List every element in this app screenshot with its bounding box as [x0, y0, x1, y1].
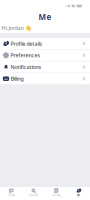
staticText: Billing — [10, 75, 23, 82]
button[interactable]: Chats — [0, 187, 22, 200]
button[interactable]: Me — [67, 187, 90, 200]
staticText: Hi, Jordan — [1, 24, 23, 32]
staticText: Notifications — [10, 63, 41, 71]
button[interactable]: Notifications — [0, 61, 90, 73]
staticText: Library — [52, 193, 60, 197]
button[interactable]: Billing — [0, 73, 90, 84]
staticText: Profile details — [10, 40, 42, 47]
button[interactable]: Library — [45, 187, 67, 200]
staticText: Me — [38, 12, 51, 22]
staticText: Chats — [8, 193, 15, 197]
staticText: Browse — [29, 193, 39, 197]
staticText: Preferences — [10, 52, 40, 59]
staticText: Me — [77, 193, 81, 197]
button[interactable]: Browse — [22, 187, 45, 200]
staticText: 👋 — [25, 25, 32, 31]
button[interactable]: Profile details — [0, 38, 90, 49]
button[interactable]: Preferences — [0, 50, 90, 61]
